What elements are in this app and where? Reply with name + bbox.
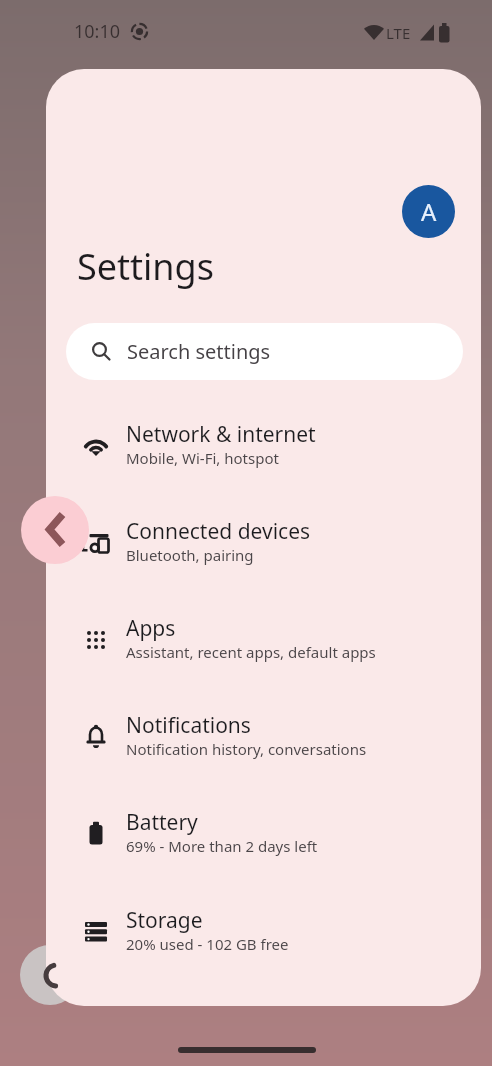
staticText: LTE: [386, 23, 411, 43]
staticText: A: [421, 195, 437, 228]
button[interactable]: [21, 496, 89, 564]
button[interactable]: Notifications: [46, 691, 481, 788]
staticText: Mobile, Wi-Fi, hotspot: [126, 448, 279, 468]
button[interactable]: A: [402, 185, 455, 238]
staticText: Storage: [126, 906, 203, 935]
staticText: 20% used - 102 GB free: [126, 934, 289, 954]
button[interactable]: Storage: [46, 886, 481, 983]
staticText: Connected devices: [126, 517, 311, 546]
staticText: Search settings: [127, 338, 271, 365]
staticText: Network & internet: [126, 420, 316, 449]
staticText: Settings: [77, 242, 214, 291]
staticText: Apps: [126, 614, 176, 643]
staticText: Battery: [126, 808, 198, 837]
button[interactable]: Apps: [46, 594, 481, 691]
staticText: Bluetooth, pairing: [126, 545, 254, 565]
staticText: 10:10: [74, 19, 121, 44]
staticText: Assistant, recent apps, default apps: [126, 642, 376, 662]
button[interactable]: Search settings: [66, 323, 463, 380]
button[interactable]: Network & internet: [46, 400, 481, 497]
staticText: Notifications: [126, 711, 251, 740]
button[interactable]: Connected devices: [46, 497, 481, 594]
staticText: 69% - More than 2 days left: [126, 836, 318, 856]
staticText: Notification history, conversations: [126, 739, 367, 759]
button[interactable]: Battery: [46, 788, 481, 885]
